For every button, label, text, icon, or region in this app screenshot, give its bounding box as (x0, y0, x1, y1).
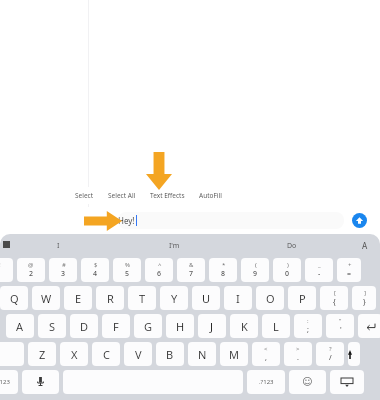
staticText: 3 (61, 269, 66, 279)
button[interactable]: U (192, 286, 220, 310)
button[interactable]: E (64, 286, 92, 310)
staticText: N (198, 347, 207, 362)
button[interactable]: I (0, 234, 116, 257)
staticText: 4 (93, 269, 98, 279)
button[interactable]: B (156, 342, 184, 366)
staticText: $ (94, 261, 98, 269)
button[interactable]: H (166, 314, 194, 338)
button[interactable]: Select (75, 187, 94, 204)
button[interactable]: * (209, 258, 237, 282)
staticText: G (144, 319, 153, 334)
button[interactable]: < (252, 342, 280, 366)
button[interactable]: ^ (145, 258, 173, 282)
button[interactable]: F (102, 314, 130, 338)
staticText: F (113, 319, 119, 334)
button[interactable]: Q (0, 286, 28, 310)
button[interactable]: Shift (0, 342, 24, 366)
button[interactable]: Text Effects (150, 187, 185, 204)
staticText: J (210, 319, 214, 334)
button[interactable]: % (113, 258, 141, 282)
staticText: ) (287, 261, 289, 269)
staticText: 9 (253, 269, 258, 279)
staticText: Select All (108, 191, 136, 200)
staticText: M (229, 347, 239, 362)
button[interactable]: W (32, 286, 60, 310)
button[interactable]: P (288, 286, 316, 310)
staticText: ? (329, 345, 332, 353)
staticText: Q (10, 291, 19, 306)
staticText: A (16, 319, 24, 334)
button[interactable]: # (49, 258, 77, 282)
staticText: ☺ (302, 376, 313, 388)
button[interactable]: Hey! (118, 212, 344, 229)
button[interactable]: G (134, 314, 162, 338)
button[interactable]: " (326, 314, 354, 338)
button[interactable]: Z (28, 342, 56, 366)
button[interactable]: Keyboard settings (350, 234, 380, 257)
button[interactable]: I (224, 286, 252, 310)
staticText: B (166, 347, 174, 362)
staticText: @ (28, 261, 34, 269)
button[interactable]: L (262, 314, 290, 338)
staticText: Do (287, 241, 297, 251)
staticText: + (348, 261, 352, 269)
button[interactable]: C (92, 342, 120, 366)
button[interactable]: X (60, 342, 88, 366)
button[interactable]: Hide keyboard (330, 370, 364, 394)
button[interactable]: N (188, 342, 216, 366)
button[interactable]: Select All (108, 187, 136, 204)
button[interactable]: T (128, 286, 156, 310)
button[interactable]: ) (273, 258, 301, 282)
button[interactable]: : (294, 314, 322, 338)
button[interactable]: V (124, 342, 152, 366)
button[interactable]: Clipboard (1, 239, 12, 250)
button[interactable]: O (256, 286, 284, 310)
button[interactable]: K (230, 314, 258, 338)
staticText: 5 (125, 269, 130, 279)
button[interactable]: M (220, 342, 248, 366)
staticText: D (80, 319, 89, 334)
staticText: = (347, 269, 352, 279)
button[interactable]: Shift (348, 342, 360, 366)
button[interactable]: .?123 (247, 370, 285, 394)
button[interactable]: AutoFill (199, 187, 222, 204)
button[interactable]: D (70, 314, 98, 338)
button[interactable]: R (96, 286, 124, 310)
button[interactable]: ? (316, 342, 344, 366)
staticText: Text Effects (150, 191, 185, 200)
button[interactable]: I'm (116, 234, 233, 257)
staticText: ] (364, 289, 366, 297)
button[interactable]: Send (352, 213, 367, 228)
button[interactable]: Emoji (289, 370, 326, 394)
button[interactable]: _ (305, 258, 333, 282)
staticText: [ (334, 289, 336, 297)
button[interactable]: Y (160, 286, 188, 310)
button[interactable]: A (6, 314, 34, 338)
button[interactable]: $ (81, 258, 109, 282)
button[interactable]: [ (320, 286, 348, 310)
button[interactable]: Do (233, 234, 350, 257)
staticText: P (299, 291, 306, 306)
button[interactable]: @ (17, 258, 45, 282)
staticText: X (71, 347, 78, 362)
button[interactable]: ! (0, 258, 13, 282)
button[interactable]: ] (352, 286, 376, 310)
button[interactable]: J (198, 314, 226, 338)
button[interactable]: + (337, 258, 361, 282)
staticText: 0 (285, 269, 290, 279)
staticText: . (297, 353, 299, 363)
staticText: } (363, 297, 366, 307)
button[interactable]: Enter (358, 314, 380, 338)
staticText: * (222, 261, 226, 269)
staticText: 6 (157, 269, 162, 279)
staticText: ^ (158, 261, 162, 269)
staticText: - (318, 269, 321, 279)
button[interactable]: & (177, 258, 205, 282)
staticText: U (202, 291, 211, 306)
button[interactable]: > (284, 342, 312, 366)
button[interactable]: ?123 (0, 370, 18, 394)
button[interactable]: ( (241, 258, 269, 282)
button[interactable]: Voice input (22, 370, 59, 394)
button[interactable]: S (38, 314, 66, 338)
